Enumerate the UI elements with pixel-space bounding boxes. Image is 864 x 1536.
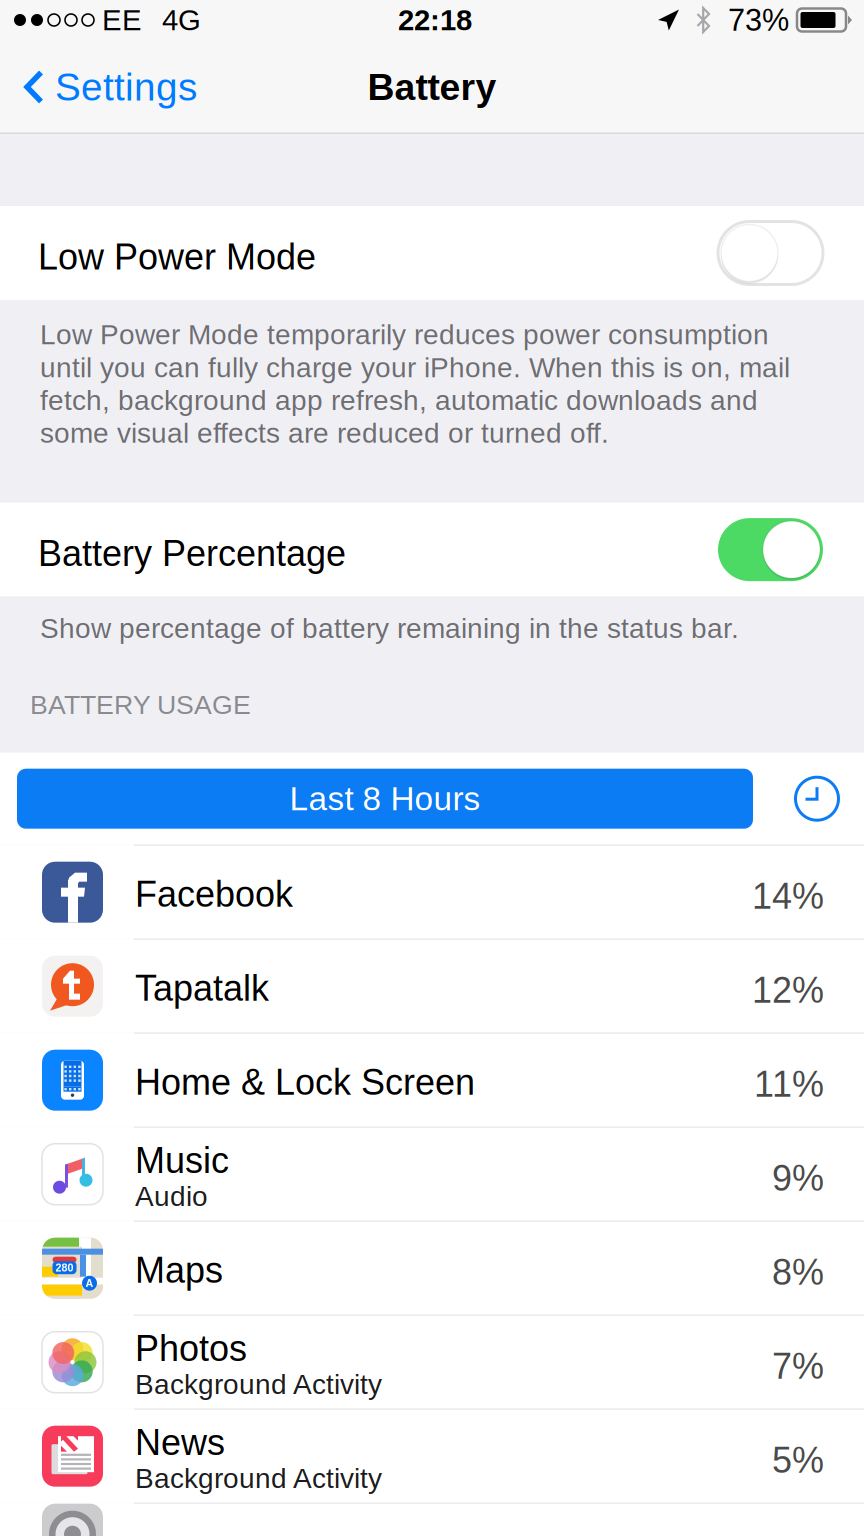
staticText: BATTERY USAGE: [30, 690, 251, 720]
staticText: 280: [55, 1262, 73, 1274]
button[interactable]: Settings: [0, 40, 213, 134]
button[interactable]: Facebook: [0, 846, 864, 939]
staticText: Low Power Mode temporarily reduces power…: [40, 319, 769, 350]
button[interactable]: Photos: [0, 1316, 864, 1409]
button[interactable]: 280: [0, 1222, 864, 1315]
button[interactable]: Battery Percentage: [0, 503, 864, 597]
staticText: Tapatalk: [135, 968, 269, 1008]
staticText: some visual effects are reduced or turne…: [40, 417, 609, 449]
staticText: A: [85, 1277, 93, 1289]
button[interactable]: Music: [0, 1128, 864, 1221]
staticText: Battery: [367, 66, 496, 108]
staticText: 4G: [162, 4, 201, 36]
button[interactable]: Last 8 Hours: [17, 769, 753, 829]
staticText: Audio: [135, 1181, 208, 1212]
staticText: 7%: [772, 1346, 824, 1386]
button[interactable]: News: [0, 1410, 864, 1503]
staticText: 9%: [772, 1158, 824, 1198]
staticText: fetch, background app refresh, automatic…: [40, 385, 758, 416]
staticText: 11%: [754, 1064, 824, 1104]
staticText: Photos: [135, 1328, 247, 1369]
staticText: Facebook: [135, 874, 293, 914]
staticText: 8%: [772, 1252, 824, 1292]
staticText: News: [135, 1422, 225, 1463]
staticText: Background Activity: [135, 1369, 382, 1400]
button[interactable]: Last 7 days: [782, 759, 852, 839]
staticText: EE: [102, 4, 142, 36]
staticText: Show percentage of battery remaining in …: [40, 613, 739, 644]
staticText: 5%: [772, 1440, 824, 1480]
staticText: Music: [135, 1140, 229, 1181]
staticText: Settings: [55, 65, 197, 109]
staticText: Home & Lock Screen: [135, 1062, 475, 1102]
staticText: Last 8 Hours: [289, 780, 480, 817]
staticText: 12%: [752, 970, 824, 1010]
staticText: Low Power Mode: [38, 237, 316, 277]
button[interactable]: Tapatalk: [0, 940, 864, 1033]
staticText: Battery Percentage: [38, 533, 346, 574]
button[interactable]: Home & Lock Screen: [0, 1034, 864, 1127]
staticText: 73%: [728, 3, 789, 37]
staticText: 22:18: [398, 4, 472, 36]
staticText: Maps: [135, 1250, 223, 1290]
staticText: 14%: [752, 876, 824, 916]
button[interactable]: Low Power Mode: [0, 206, 864, 300]
staticText: Background Activity: [135, 1463, 382, 1494]
staticText: until you can fully charge your iPhone. …: [40, 352, 790, 383]
